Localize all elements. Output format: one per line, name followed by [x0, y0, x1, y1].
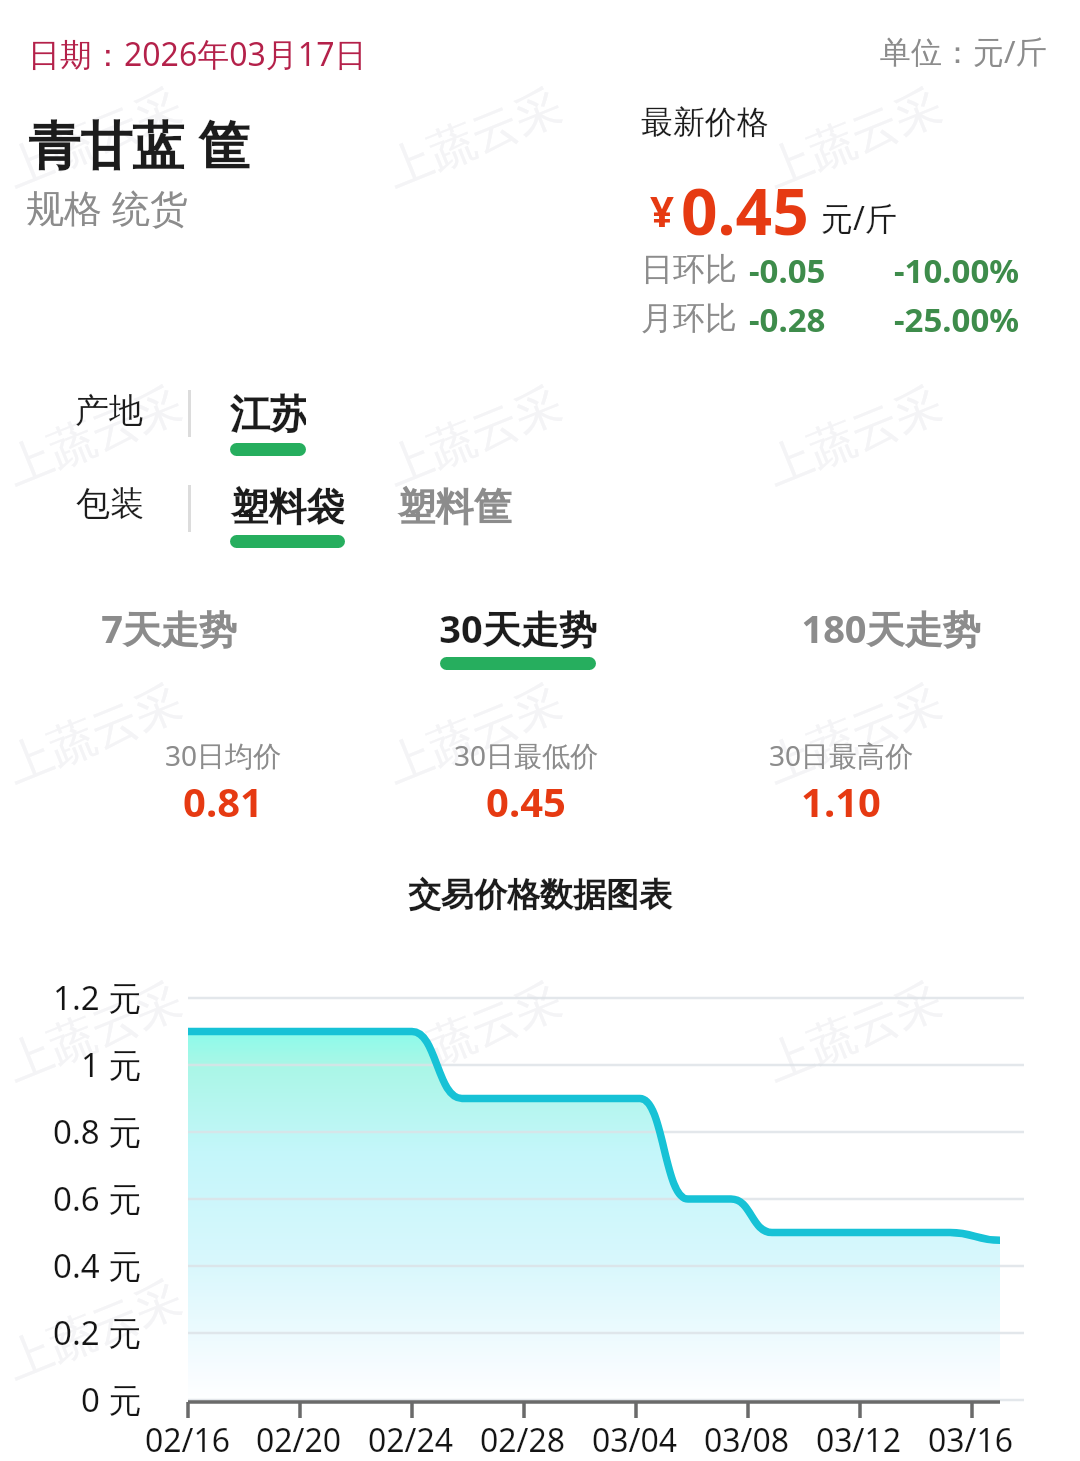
staticText: 塑料筐 [397, 483, 512, 531]
staticText: 30日均价 [83, 736, 363, 774]
staticText: 02/16 [145, 1418, 231, 1461]
staticText: 规格 统货 [26, 181, 188, 233]
staticText: 塑料袋 [230, 483, 345, 531]
staticText: 0.45 [386, 774, 666, 828]
staticText: 1.2 元 [53, 975, 142, 1020]
button[interactable]: 塑料筐 [397, 473, 512, 531]
staticText: 最新价格 [641, 102, 769, 142]
button[interactable]: 塑料袋 [230, 473, 345, 548]
staticText: 交易价格数据图表 [408, 874, 672, 916]
staticText: -10.00% [894, 248, 1020, 293]
staticText: 0 元 [81, 1377, 142, 1422]
staticText: 02/28 [480, 1418, 566, 1461]
staticText: 青甘蓝 筐 [28, 108, 250, 179]
staticText: 产地 [75, 389, 143, 432]
staticText: 0.6 元 [53, 1176, 142, 1221]
staticText: 7天走势 [69, 602, 269, 654]
staticText: -0.28 [749, 297, 826, 342]
button[interactable]: 江苏 [230, 379, 306, 456]
staticText: 0.2 元 [53, 1310, 142, 1355]
staticText: 180天走势 [781, 602, 1001, 654]
staticText: 03/16 [928, 1418, 1014, 1461]
staticText: 30日最高价 [701, 736, 981, 774]
staticText: 单位：元/斤 [880, 30, 1047, 72]
staticText: 0.4 元 [53, 1243, 142, 1288]
staticText: 日期：2026年03月17日 [28, 32, 367, 76]
staticText: 03/04 [592, 1418, 678, 1461]
staticText: 江苏 [230, 389, 306, 439]
staticText: 02/20 [256, 1418, 342, 1461]
button[interactable]: 30天走势 [418, 584, 618, 694]
staticText: -0.05 [749, 248, 826, 293]
staticText: 月环比 [641, 298, 737, 338]
staticText: 03/08 [704, 1418, 790, 1461]
button[interactable]: 180天走势 [781, 584, 1001, 694]
staticText: 30天走势 [418, 602, 618, 654]
staticText: -25.00% [894, 297, 1020, 342]
staticText: 日环比 [641, 249, 737, 289]
staticText: 元/斤 [821, 196, 897, 240]
staticText: 1 元 [81, 1042, 142, 1087]
staticText: 30日最低价 [386, 736, 666, 774]
staticText: 1.10 [701, 774, 981, 828]
staticText: ¥ [650, 182, 675, 239]
button[interactable]: 7天走势 [69, 584, 269, 694]
staticText: 03/12 [816, 1418, 902, 1461]
staticText: 02/24 [368, 1418, 454, 1461]
staticText: 0.81 [83, 774, 363, 828]
staticText: 0.8 元 [53, 1109, 142, 1154]
staticText: 0.45 [681, 167, 809, 254]
staticText: 包装 [76, 482, 144, 525]
